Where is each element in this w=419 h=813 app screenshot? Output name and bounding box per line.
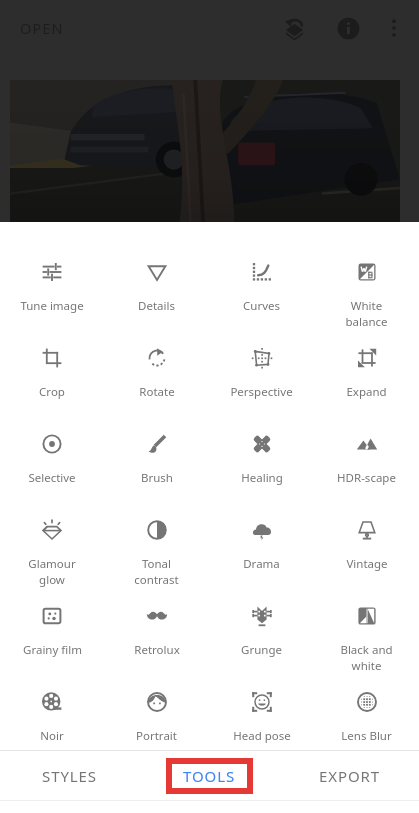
- staticText: Vintage: [346, 556, 388, 572]
- staticText: Retrolux: [134, 642, 180, 658]
- staticText: Portrait: [136, 728, 177, 744]
- button[interactable]: Healing: [209, 420, 314, 506]
- staticText: Grainy film: [23, 642, 82, 658]
- staticText: Crop: [39, 384, 65, 400]
- button[interactable]: Noir: [0, 678, 104, 764]
- button[interactable]: White balance: [314, 248, 419, 334]
- button[interactable]: Retrolux: [104, 592, 209, 678]
- staticText: Drama: [243, 556, 280, 572]
- button[interactable]: Crop: [0, 334, 104, 420]
- staticText: Selective: [28, 470, 76, 486]
- staticText: Healing: [241, 470, 283, 486]
- button[interactable]: Vintage: [314, 506, 419, 592]
- button[interactable]: HDR-scape: [314, 420, 419, 506]
- staticText: Expand: [346, 384, 387, 400]
- staticText: Brush: [141, 470, 173, 486]
- button[interactable]: Tonal contrast: [104, 506, 209, 592]
- button[interactable]: TOOLS: [139, 751, 279, 800]
- button[interactable]: STYLES: [0, 751, 139, 800]
- button[interactable]: Expand: [314, 334, 419, 420]
- button[interactable]: Tune image: [0, 248, 104, 334]
- button[interactable]: Curves: [209, 248, 314, 334]
- button[interactable]: Drama: [209, 506, 314, 592]
- button[interactable]: Black and white: [314, 592, 419, 678]
- button[interactable]: Brush: [104, 420, 209, 506]
- button[interactable]: EXPORT: [279, 751, 419, 800]
- staticText: Glamour glow: [28, 556, 76, 587]
- button[interactable]: OPEN: [18, 16, 66, 40]
- staticText: Head pose: [233, 728, 291, 744]
- staticText: Noir: [40, 728, 64, 744]
- button[interactable]: Grainy film: [0, 592, 104, 678]
- button[interactable]: Glamour glow: [0, 506, 104, 592]
- staticText: Tonal contrast: [134, 556, 179, 587]
- staticText: Details: [138, 298, 175, 314]
- button[interactable]: Info: [326, 6, 370, 50]
- button[interactable]: Lens Blur: [314, 678, 419, 764]
- staticText: Black and white: [340, 642, 393, 673]
- staticText: Curves: [243, 298, 280, 314]
- staticText: STYLES: [42, 766, 97, 786]
- staticText: EXPORT: [319, 766, 380, 786]
- staticText: TOOLS: [183, 766, 236, 786]
- staticText: OPEN: [20, 18, 64, 38]
- button[interactable]: Grunge: [209, 592, 314, 678]
- staticText: Rotate: [139, 384, 175, 400]
- staticText: White balance: [345, 298, 388, 329]
- staticText: Tune image: [20, 298, 84, 314]
- staticText: Lens Blur: [341, 728, 392, 744]
- staticText: HDR-scape: [337, 470, 396, 486]
- button[interactable]: Rotate: [104, 334, 209, 420]
- button[interactable]: Details: [104, 248, 209, 334]
- button[interactable]: Head pose: [209, 678, 314, 764]
- button[interactable]: Undo edit stack: [272, 6, 316, 50]
- staticText: Perspective: [230, 384, 293, 400]
- button[interactable]: Selective: [0, 420, 104, 506]
- button[interactable]: Portrait: [104, 678, 209, 764]
- button[interactable]: Perspective: [209, 334, 314, 420]
- staticText: Grunge: [241, 642, 282, 658]
